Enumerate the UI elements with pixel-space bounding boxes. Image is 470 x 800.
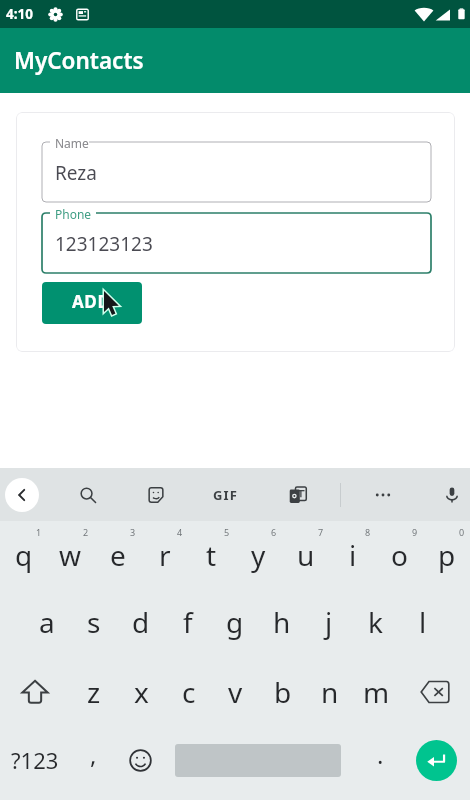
staticText: b	[274, 673, 292, 711]
staticText: 3	[130, 526, 136, 538]
staticText: c	[182, 673, 196, 711]
staticText: s	[87, 603, 101, 641]
button[interactable]: g	[211, 594, 258, 650]
button[interactable]: 4	[141, 527, 188, 583]
button[interactable]: j	[305, 594, 352, 650]
button[interactable]: k	[352, 594, 399, 650]
staticText: n	[321, 673, 339, 711]
staticText: e	[110, 536, 126, 574]
staticText: 4	[177, 526, 183, 538]
button[interactable]: m	[353, 664, 400, 720]
staticText: 2	[83, 526, 89, 538]
button[interactable]: h	[258, 594, 305, 650]
staticText: a	[39, 603, 55, 641]
button[interactable]: c	[165, 664, 212, 720]
staticText: t	[206, 536, 217, 574]
staticText: w	[59, 536, 82, 574]
button[interactable]: 5	[188, 527, 235, 583]
staticText: u	[297, 536, 315, 574]
button[interactable]: More options	[363, 468, 403, 521]
button[interactable]: GIF	[206, 468, 246, 521]
staticText: 4:10	[6, 5, 33, 23]
staticText: y	[251, 536, 266, 574]
button[interactable]: x	[118, 664, 165, 720]
staticText: Name	[55, 135, 89, 151]
button[interactable]: l	[399, 594, 446, 650]
staticText: d	[132, 603, 150, 641]
button[interactable]: Voice input	[432, 468, 470, 521]
staticText: Phone	[55, 206, 92, 222]
staticText: MyContacts	[14, 45, 144, 76]
staticText: ?123	[11, 745, 59, 775]
staticText: f	[183, 603, 193, 641]
staticText: q	[15, 536, 33, 574]
button[interactable]: z	[70, 664, 118, 720]
staticText: j	[325, 603, 333, 641]
button[interactable]: 8	[329, 527, 376, 583]
button[interactable]: Translate	[278, 468, 318, 521]
button[interactable]: b	[259, 664, 306, 720]
button[interactable]: a	[24, 594, 70, 650]
button[interactable]: Back	[5, 478, 39, 512]
button[interactable]: Search	[68, 468, 108, 521]
staticText: 5	[224, 526, 230, 538]
staticText: m	[363, 673, 390, 711]
staticText: k	[368, 603, 383, 641]
staticText: x	[134, 673, 149, 711]
staticText: r	[159, 536, 171, 574]
button[interactable]: 2	[47, 527, 94, 583]
staticText: g	[226, 603, 244, 641]
button[interactable]: n	[306, 664, 353, 720]
staticText: l	[419, 603, 427, 641]
button[interactable]: 1	[0, 527, 47, 583]
staticText: 123123123	[55, 231, 153, 257]
staticText: h	[273, 603, 291, 641]
staticText: 7	[318, 526, 324, 538]
button[interactable]: 7	[282, 527, 329, 583]
staticText: i	[349, 536, 357, 574]
button[interactable]: f	[164, 594, 211, 650]
button[interactable]: 0	[423, 527, 470, 583]
button[interactable]: d	[117, 594, 164, 650]
button[interactable]: Phone	[42, 205, 431, 273]
button[interactable]: v	[212, 664, 259, 720]
staticText: v	[228, 673, 243, 711]
button[interactable]: 9	[376, 527, 423, 583]
staticText: z	[87, 673, 101, 711]
staticText: 8	[365, 526, 371, 538]
button[interactable]: ?123	[0, 732, 70, 788]
button[interactable]: 6	[235, 527, 282, 583]
staticText: 6	[271, 526, 277, 538]
staticText: Reza	[55, 160, 97, 186]
button[interactable]: 3	[94, 527, 141, 583]
button[interactable]: Enter	[416, 740, 457, 781]
button[interactable]: s	[70, 594, 117, 650]
button[interactable]: Stickers	[136, 468, 176, 521]
button[interactable]: Name	[42, 134, 431, 202]
staticText: ADD	[72, 290, 111, 313]
button[interactable]: Emoji	[117, 732, 164, 788]
staticText: ,	[90, 738, 97, 771]
button[interactable]: ADD	[42, 282, 142, 324]
staticText: 1	[36, 526, 42, 538]
button[interactable]: ,	[70, 732, 117, 788]
staticText: GIF	[213, 486, 239, 504]
staticText: p	[438, 536, 456, 574]
staticText: 9	[412, 526, 418, 538]
staticText: .	[377, 738, 384, 771]
staticText: 0	[459, 526, 465, 538]
button[interactable]: .	[357, 732, 404, 788]
button[interactable]: Shift	[0, 668, 70, 716]
staticText: o	[391, 536, 408, 574]
button[interactable]: Backspace	[400, 668, 470, 716]
